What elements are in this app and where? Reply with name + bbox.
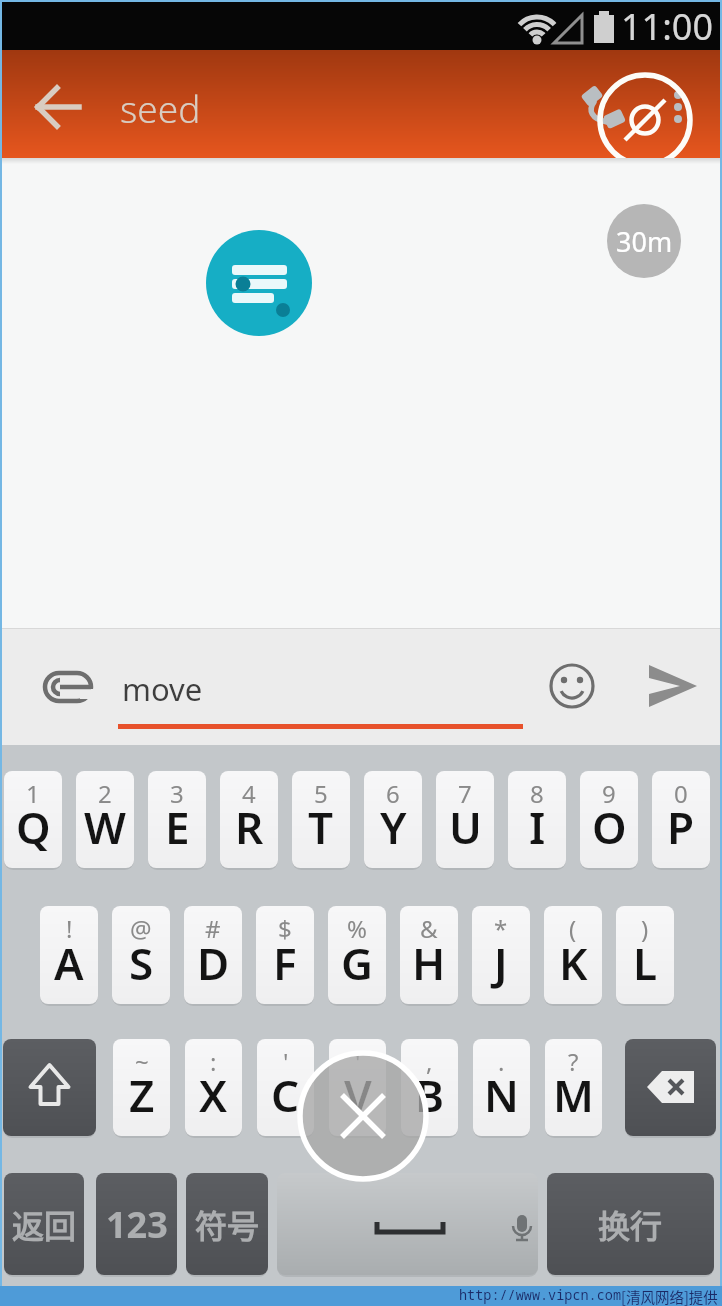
staticText: move — [122, 668, 203, 710]
button[interactable] — [206, 230, 312, 336]
staticText: 9 — [602, 777, 616, 810]
staticText: @ — [130, 912, 152, 945]
staticText: ' — [355, 1045, 361, 1078]
staticText: L — [633, 933, 658, 993]
button[interactable]: ! — [40, 906, 98, 1004]
staticText: 换行 — [598, 1201, 663, 1247]
staticText: ! — [66, 912, 73, 945]
staticText: ( — [569, 912, 577, 945]
staticText: U — [449, 797, 482, 857]
staticText: A — [54, 933, 84, 993]
button[interactable]: $ — [256, 906, 314, 1004]
button[interactable]: 符号 — [186, 1173, 268, 1275]
button[interactable] — [600, 75, 690, 165]
button[interactable]: 8 — [508, 771, 566, 868]
staticText: 123 — [106, 1200, 168, 1249]
button[interactable]: . — [473, 1039, 530, 1136]
button[interactable]: 换行 — [547, 1173, 714, 1275]
staticText: 0 — [674, 777, 688, 810]
staticText: 7 — [458, 777, 472, 810]
staticText: [清风网络]提供 — [621, 1286, 718, 1306]
staticText: $ — [278, 912, 292, 945]
button[interactable]: 4 — [220, 771, 278, 868]
staticText: F — [273, 933, 297, 993]
button[interactable] — [3, 1039, 96, 1136]
staticText: * — [494, 912, 508, 945]
staticText: ? — [568, 1045, 579, 1078]
staticText: H — [412, 933, 446, 993]
staticText: Y — [380, 797, 407, 857]
button[interactable]: 3 — [148, 771, 206, 868]
staticText: N — [484, 1065, 519, 1125]
button[interactable] — [546, 660, 598, 712]
staticText: 1 — [26, 777, 40, 810]
button[interactable]: ' — [329, 1039, 386, 1136]
staticText: 返回 — [12, 1201, 77, 1247]
staticText: & — [420, 912, 438, 945]
button[interactable]: @ — [112, 906, 170, 1004]
staticText: seed — [120, 83, 201, 133]
button[interactable] — [30, 78, 86, 134]
staticText: S — [129, 933, 154, 993]
button[interactable]: ( — [544, 906, 602, 1004]
button[interactable]: % — [328, 906, 386, 1004]
button[interactable]: ) — [616, 906, 674, 1004]
staticText: ~ — [135, 1045, 149, 1078]
staticText: ' — [283, 1045, 289, 1078]
staticText: : — [210, 1045, 217, 1078]
staticText: C — [271, 1065, 300, 1125]
staticText: http://www.vipcn.com — [459, 1286, 621, 1304]
button[interactable]: ? — [545, 1039, 602, 1136]
button[interactable]: , — [401, 1039, 458, 1136]
staticText: 8 — [530, 777, 544, 810]
staticText: X — [199, 1065, 228, 1125]
button[interactable] — [32, 664, 102, 720]
staticText: K — [559, 933, 588, 993]
staticText: O — [592, 797, 627, 857]
button[interactable]: 6 — [364, 771, 422, 868]
staticText: G — [341, 933, 373, 993]
staticText: % — [347, 912, 367, 945]
staticText: D — [197, 933, 230, 993]
staticText: 30m — [616, 223, 673, 260]
staticText: ) — [641, 912, 649, 945]
staticText: 符号 — [195, 1201, 260, 1247]
button[interactable] — [625, 1039, 716, 1136]
staticText: 3 — [170, 777, 184, 810]
staticText: Q — [16, 797, 51, 857]
staticText: T — [308, 797, 334, 857]
button[interactable]: ' — [257, 1039, 314, 1136]
staticText: I — [529, 797, 546, 857]
button[interactable]: ~ — [113, 1039, 170, 1136]
staticText: V — [344, 1065, 372, 1125]
button[interactable] — [638, 658, 704, 714]
staticText: 11:00 — [621, 2, 714, 50]
staticText: 5 — [314, 777, 328, 810]
button[interactable]: 7 — [436, 771, 494, 868]
button[interactable]: 123 — [96, 1173, 177, 1275]
button[interactable]: 9 — [580, 771, 638, 868]
staticText: B — [415, 1065, 444, 1125]
button[interactable]: * — [472, 906, 530, 1004]
button[interactable]: & — [400, 906, 458, 1004]
staticText: 2 — [98, 777, 112, 810]
staticText: M — [553, 1065, 594, 1125]
staticText: . — [498, 1045, 505, 1078]
staticText: W — [84, 797, 126, 857]
staticText: E — [165, 797, 190, 857]
staticText: 4 — [242, 777, 256, 810]
staticText: # — [205, 912, 221, 945]
staticText: 6 — [386, 777, 400, 810]
button[interactable] — [277, 1173, 538, 1275]
staticText: J — [494, 933, 508, 993]
staticText: R — [235, 797, 264, 857]
button[interactable]: # — [184, 906, 242, 1004]
staticText: P — [667, 797, 695, 857]
staticText: Z — [129, 1065, 155, 1125]
button[interactable]: 返回 — [4, 1173, 84, 1275]
button[interactable]: : — [185, 1039, 242, 1136]
button[interactable]: 2 — [76, 771, 134, 868]
button[interactable]: 5 — [292, 771, 350, 868]
button[interactable]: 1 — [4, 771, 62, 868]
button[interactable]: 0 — [652, 771, 710, 868]
